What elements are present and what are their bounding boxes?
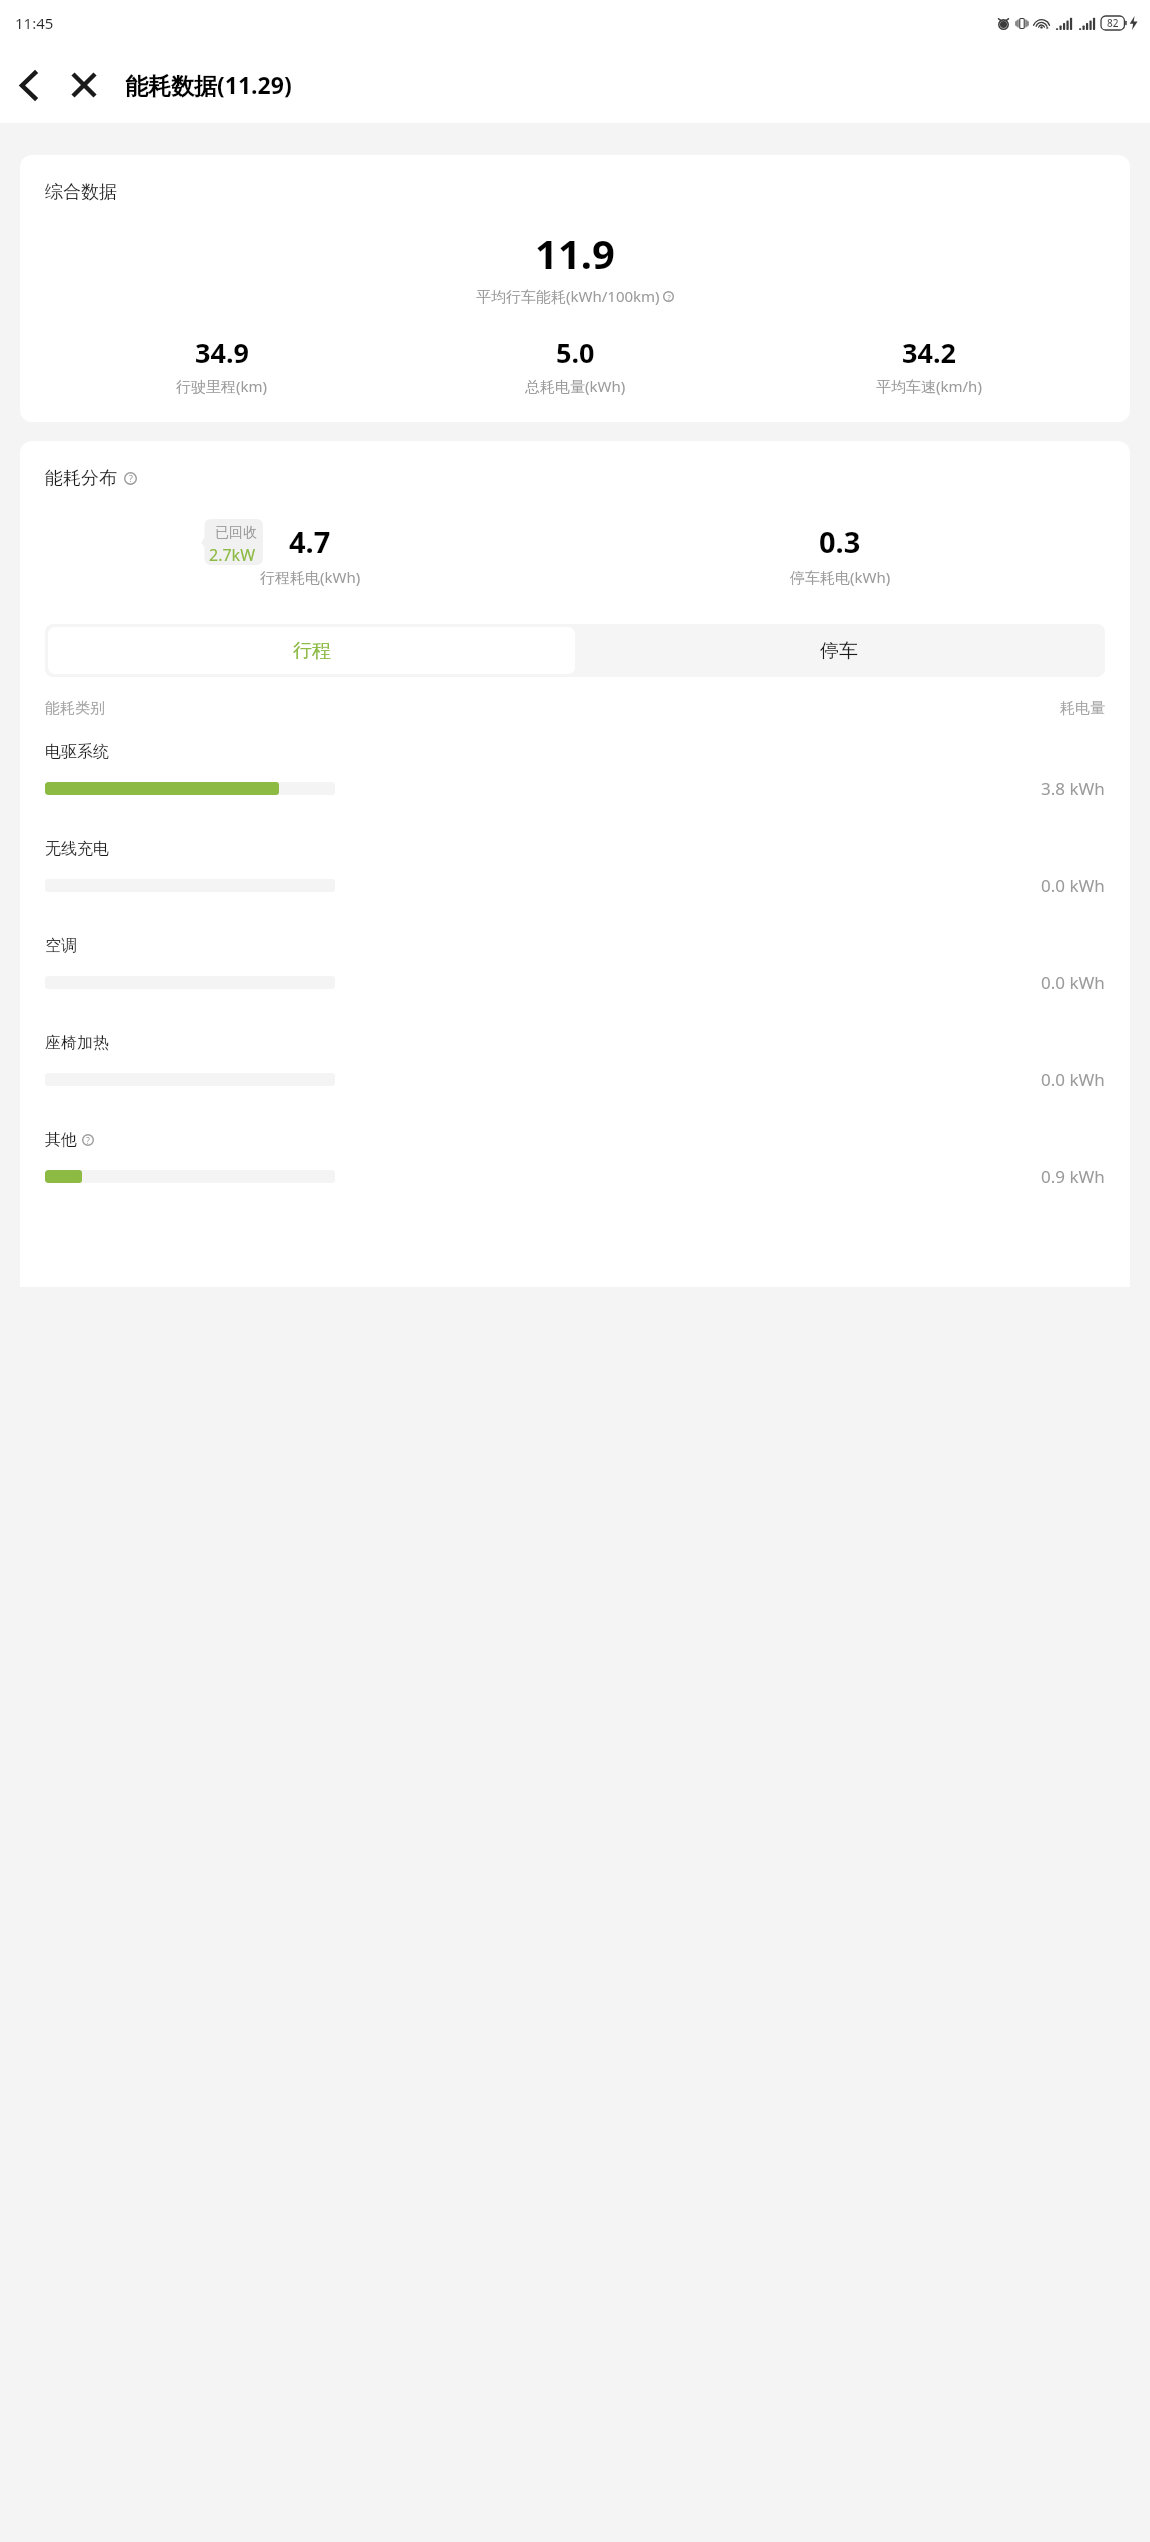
staticText: 电驱系统 bbox=[45, 742, 109, 762]
staticText: 34.2 bbox=[902, 334, 956, 371]
staticText: ? bbox=[667, 292, 671, 302]
staticText: 能耗分布 bbox=[45, 467, 117, 490]
staticText: 4.7 bbox=[289, 522, 331, 561]
button[interactable]: 停车 bbox=[575, 627, 1102, 674]
staticText: 停车 bbox=[820, 639, 858, 663]
staticText: 0.0 kWh bbox=[1041, 1068, 1105, 1091]
staticText: 11.9 bbox=[535, 226, 615, 280]
staticText: 行驶里程(km) bbox=[176, 376, 268, 396]
staticText: 0.3 bbox=[819, 522, 861, 561]
staticText: 综合数据 bbox=[45, 181, 117, 204]
staticText: 2.7kWh bbox=[209, 544, 263, 565]
staticText: ? bbox=[86, 1135, 90, 1146]
staticText: 3.8 kWh bbox=[1041, 777, 1105, 800]
staticText: 能耗数据(11.29) bbox=[125, 69, 292, 100]
staticText: 行程耗电(kWh) bbox=[260, 567, 361, 587]
staticText: 耗电量 bbox=[1060, 699, 1105, 718]
staticText: 行程 bbox=[293, 639, 331, 663]
staticText: 0.0 kWh bbox=[1041, 971, 1105, 994]
staticText: 平均车速(km/h) bbox=[876, 376, 982, 396]
staticText: 0.9 kWh bbox=[1041, 1165, 1105, 1188]
staticText: ? bbox=[129, 473, 133, 485]
staticText: 已回收 bbox=[215, 524, 257, 542]
button[interactable]: Close bbox=[56, 57, 112, 113]
staticText: 无线充电 bbox=[45, 839, 109, 859]
staticText: 平均行车能耗(kWh/100km) bbox=[476, 286, 660, 306]
staticText: 停车耗电(kWh) bbox=[790, 567, 891, 587]
button[interactable]: Back bbox=[0, 57, 56, 113]
staticText: 0.0 kWh bbox=[1041, 874, 1105, 897]
staticText: 总耗电量(kWh) bbox=[525, 376, 626, 396]
staticText: 其他 bbox=[45, 1130, 77, 1150]
staticText: 11:45 bbox=[15, 13, 54, 33]
staticText: 82 bbox=[1107, 16, 1119, 30]
staticText: 能耗类别 bbox=[45, 699, 105, 718]
staticText: 空调 bbox=[45, 936, 77, 956]
staticText: 34.9 bbox=[195, 334, 249, 371]
button[interactable]: 行程 bbox=[48, 627, 575, 674]
staticText: 座椅加热 bbox=[45, 1033, 109, 1053]
staticText: 5.0 bbox=[556, 334, 595, 371]
